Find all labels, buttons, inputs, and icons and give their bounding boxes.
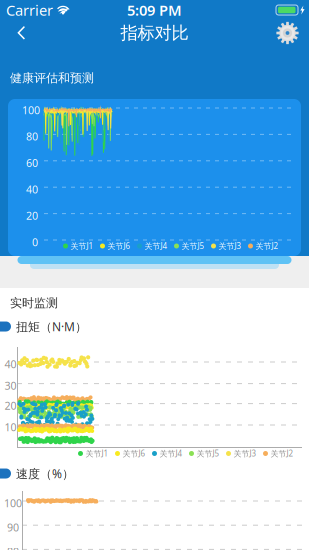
button[interactable]: Back xyxy=(0,20,43,46)
staticText: 60 xyxy=(26,156,38,170)
staticText: 关节J2 xyxy=(255,241,278,251)
staticText: 实时监测 xyxy=(10,296,58,310)
staticText: 健康评估和预测 xyxy=(10,71,94,85)
staticText: 关节J1 xyxy=(70,241,93,251)
staticText: 80 xyxy=(26,129,38,144)
staticText: 关节J6 xyxy=(107,241,130,251)
staticText: 40 xyxy=(26,182,38,196)
staticText: 关节J5 xyxy=(196,448,219,459)
staticText: 20 xyxy=(26,209,38,223)
button[interactable]: Settings xyxy=(264,19,309,46)
staticText: 扭矩（N·M） xyxy=(16,318,87,334)
staticText: 速度（%） xyxy=(16,465,74,481)
staticText: 关节J4 xyxy=(159,448,182,459)
staticText: 关节J4 xyxy=(144,241,167,251)
staticText: 0 xyxy=(32,235,38,249)
staticText: 关节J1 xyxy=(85,448,108,459)
staticText: 10 xyxy=(4,420,16,434)
staticText: 关节J3 xyxy=(233,448,256,459)
staticText: 90 xyxy=(7,520,19,534)
staticText: 40 xyxy=(4,357,16,371)
staticText: 80 xyxy=(7,544,19,550)
staticText: 关节J6 xyxy=(122,448,145,459)
staticText: 30 xyxy=(4,379,16,393)
staticText: 关节J3 xyxy=(218,241,241,251)
staticText: 20 xyxy=(4,399,16,413)
staticText: Carrier xyxy=(6,0,53,20)
staticText: 指标对比 xyxy=(120,22,188,44)
staticText: 100 xyxy=(4,496,22,510)
staticText: 关节J5 xyxy=(181,241,204,251)
staticText: 5:09 PM xyxy=(127,0,182,20)
staticText: 100 xyxy=(22,103,40,117)
staticText: 关节J2 xyxy=(270,448,293,459)
